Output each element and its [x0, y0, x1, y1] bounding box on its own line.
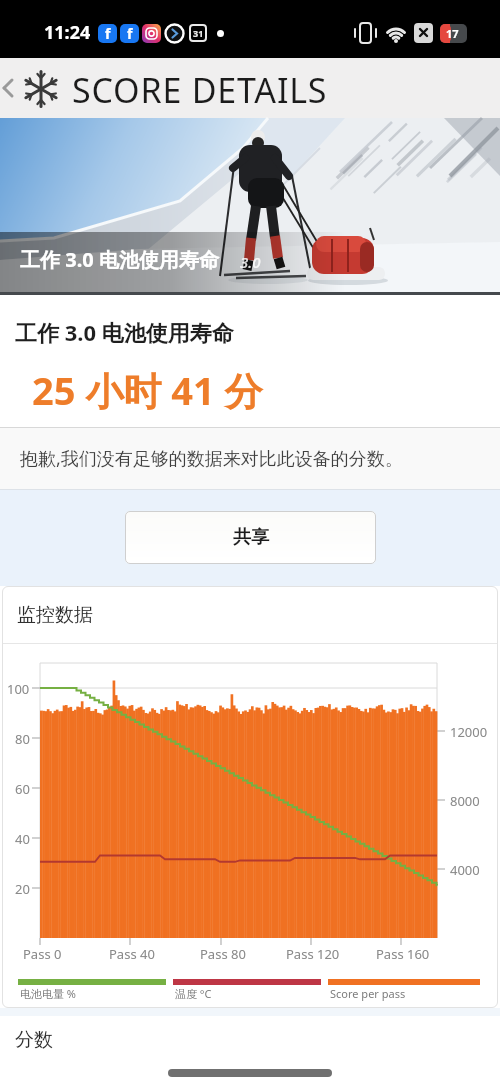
staticText: Pass 0	[23, 945, 62, 963]
staticText: 工作 3.0 电池使用寿命	[20, 246, 219, 273]
staticText: Pass 80	[200, 945, 246, 963]
staticText: 80	[15, 730, 30, 746]
staticText: 17	[446, 26, 459, 41]
staticText: 20	[15, 880, 30, 896]
staticText: 11:24	[44, 20, 91, 45]
staticText: 3.0	[240, 252, 261, 272]
staticText: 8000	[450, 792, 480, 810]
staticText: f	[105, 24, 111, 43]
staticText: 工作 3.0 电池使用寿命	[15, 317, 234, 347]
staticText: 25 小时 41 分	[32, 364, 263, 416]
button[interactable]: 共享	[125, 511, 376, 564]
staticText: 电池电量 %	[20, 986, 77, 1001]
staticText: 共享	[233, 526, 269, 549]
button[interactable]: SCORE DETAILS	[0, 58, 500, 118]
staticText: 60	[15, 780, 30, 796]
staticText: 4000	[450, 861, 480, 879]
staticText: 分数	[15, 1028, 53, 1052]
staticText: 40	[15, 830, 30, 846]
staticText: 监控数据	[17, 603, 93, 627]
staticText: Pass 40	[109, 945, 155, 963]
staticText: f	[127, 24, 133, 43]
staticText: 100	[7, 680, 30, 696]
staticText: SCORE DETAILS	[72, 67, 328, 113]
staticText: 12000	[450, 723, 488, 741]
staticText: 31	[193, 27, 204, 39]
staticText: Pass 160	[376, 945, 430, 963]
staticText: Pass 120	[286, 945, 340, 963]
staticText: Score per pass	[330, 986, 406, 1001]
staticText: 温度 °C	[175, 986, 212, 1001]
staticText: 抱歉,我们没有足够的数据来对比此设备的分数。	[20, 446, 403, 471]
